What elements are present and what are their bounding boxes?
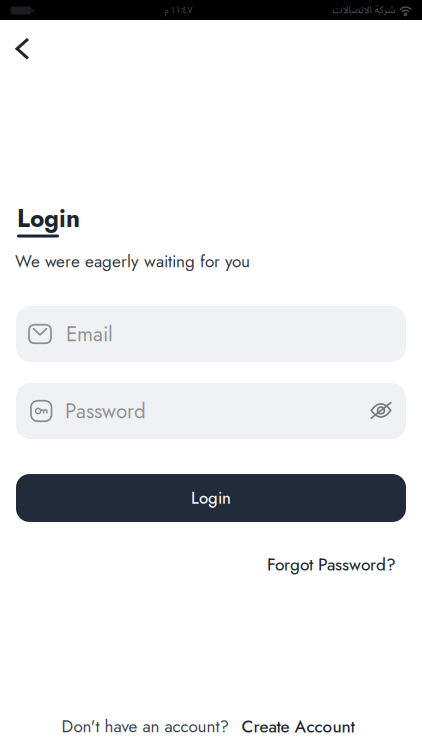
button[interactable]: Password — [16, 383, 406, 439]
button[interactable]: Email — [16, 306, 406, 362]
staticText: ١١:٤٧ م — [164, 1, 192, 19]
staticText: Forgot Password? — [267, 552, 396, 577]
staticText: We were eagerly waiting for you — [15, 249, 250, 274]
button[interactable]: Create Account — [241, 714, 354, 739]
button[interactable] — [361, 393, 401, 428]
staticText: Email — [66, 319, 113, 349]
staticText: Login — [191, 486, 231, 510]
button[interactable] — [5, 27, 40, 70]
button[interactable]: Login — [16, 474, 406, 522]
staticText: شركة الاتصالات — [332, 0, 395, 20]
staticText: Password — [65, 396, 146, 426]
staticText: Create Account — [241, 714, 354, 739]
button[interactable]: Forgot Password? — [267, 552, 396, 577]
staticText: Login — [17, 201, 80, 236]
staticText: Don't have an account? — [61, 714, 229, 739]
